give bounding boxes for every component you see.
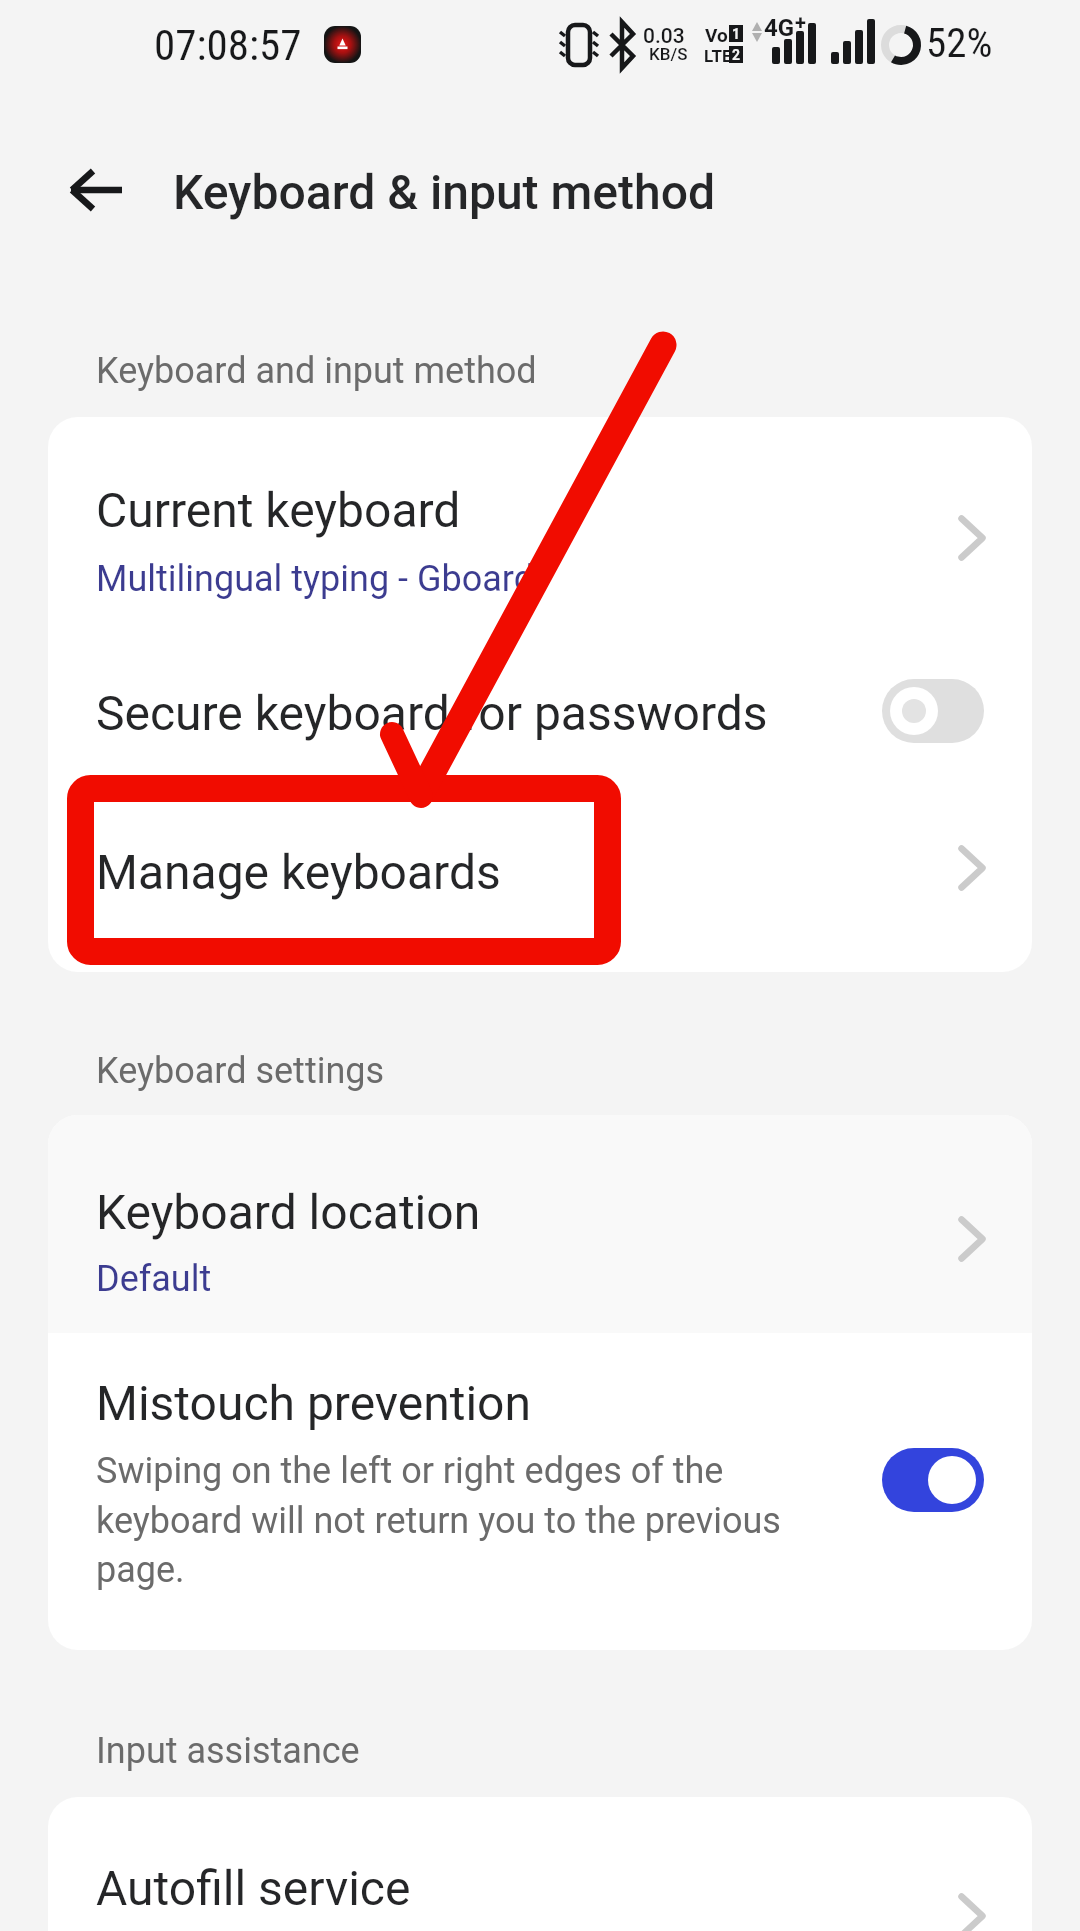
staticText: 52% [926, 19, 993, 67]
button[interactable] [48, 417, 1032, 649]
staticText: LTE [704, 46, 732, 66]
button[interactable] [48, 1797, 1032, 1931]
staticText: Keyboard location [96, 1184, 481, 1240]
staticText: Current keyboard [96, 482, 461, 538]
staticText: 1 [732, 26, 741, 42]
button[interactable] [48, 649, 1032, 773]
staticText: 4G [764, 14, 795, 42]
button[interactable] [48, 773, 1032, 972]
button[interactable] [48, 1115, 1032, 1333]
staticText: Keyboard and input method [96, 350, 537, 392]
button[interactable]: Secure keyboard for passwords, off [882, 679, 984, 743]
staticText: KB/S [649, 44, 688, 64]
staticText: Autofill service [96, 1860, 411, 1916]
button[interactable]: Back [36, 148, 132, 232]
staticText: Default [96, 1258, 856, 1300]
staticText: + [795, 10, 806, 33]
staticText: 07:08:57 [154, 20, 302, 70]
staticText: 0.03 [643, 24, 685, 49]
staticText: Keyboard settings [96, 1050, 385, 1092]
staticText: Swiping on the left or right edges of th… [96, 1450, 802, 1591]
staticText: Vo [705, 24, 728, 46]
staticText: Input assistance [96, 1730, 360, 1772]
button[interactable]: Mistouch prevention, on [882, 1448, 984, 1512]
staticText: Multilingual typing - Gboard [96, 558, 856, 600]
staticText: Keyboard & input method [173, 164, 716, 220]
staticText: 2 [732, 47, 741, 63]
staticText: Mistouch prevention [96, 1375, 531, 1431]
button[interactable] [48, 1333, 1032, 1650]
staticText: Secure keyboard for passwords [96, 685, 768, 741]
staticText: Manage keyboards [96, 844, 501, 900]
